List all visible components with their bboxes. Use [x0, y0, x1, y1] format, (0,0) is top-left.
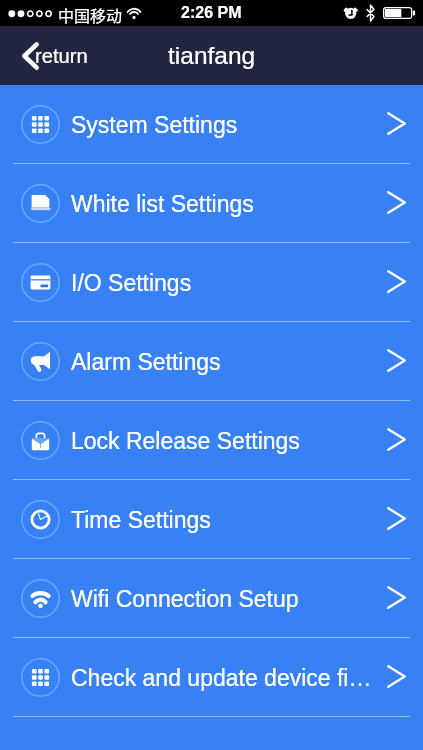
staticText: Lock Release Settings: [71, 428, 376, 454]
button[interactable]: Time Settings: [0, 480, 423, 559]
staticText: System Settings: [71, 112, 376, 138]
staticText: I/O Settings: [71, 270, 376, 296]
staticText: 中国移动: [58, 3, 123, 26]
button[interactable]: Lock Release Settings: [0, 401, 423, 480]
button[interactable]: Alarm Settings: [0, 322, 423, 401]
button[interactable]: Wifi Connection Setup: [0, 559, 423, 638]
staticText: return: [35, 45, 88, 68]
staticText: tianfang: [168, 42, 256, 69]
staticText: Wifi Connection Setup: [71, 586, 376, 612]
staticText: Time Settings: [71, 507, 376, 533]
button[interactable]: Back: return: [14, 32, 96, 79]
button[interactable]: Check and update device firmware: [0, 638, 423, 717]
staticText: 2:26 PM: [181, 4, 242, 22]
staticText: White list Settings: [71, 191, 376, 217]
staticText: Alarm Settings: [71, 349, 376, 375]
staticText: Check and update device firmware: [71, 665, 376, 691]
button[interactable]: System Settings: [0, 85, 423, 164]
button[interactable]: I/O Settings: [0, 243, 423, 322]
button[interactable]: White list Settings: [0, 164, 423, 243]
